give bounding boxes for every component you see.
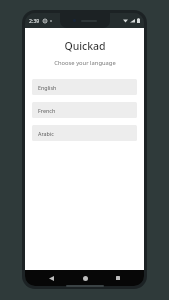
button[interactable]: French bbox=[32, 102, 137, 118]
button[interactable]: English bbox=[32, 79, 137, 95]
button[interactable]: Home bbox=[78, 271, 92, 285]
staticText: Choose your language bbox=[54, 59, 116, 67]
button[interactable]: Back bbox=[44, 271, 58, 285]
button[interactable]: Arabic bbox=[32, 125, 137, 141]
staticText: Arabic bbox=[38, 130, 54, 137]
staticText: French bbox=[38, 107, 56, 114]
staticText: English bbox=[38, 84, 57, 91]
staticText: Quickad bbox=[64, 39, 106, 53]
button[interactable]: Recent apps bbox=[111, 271, 125, 285]
staticText: 2:39 bbox=[29, 17, 40, 24]
